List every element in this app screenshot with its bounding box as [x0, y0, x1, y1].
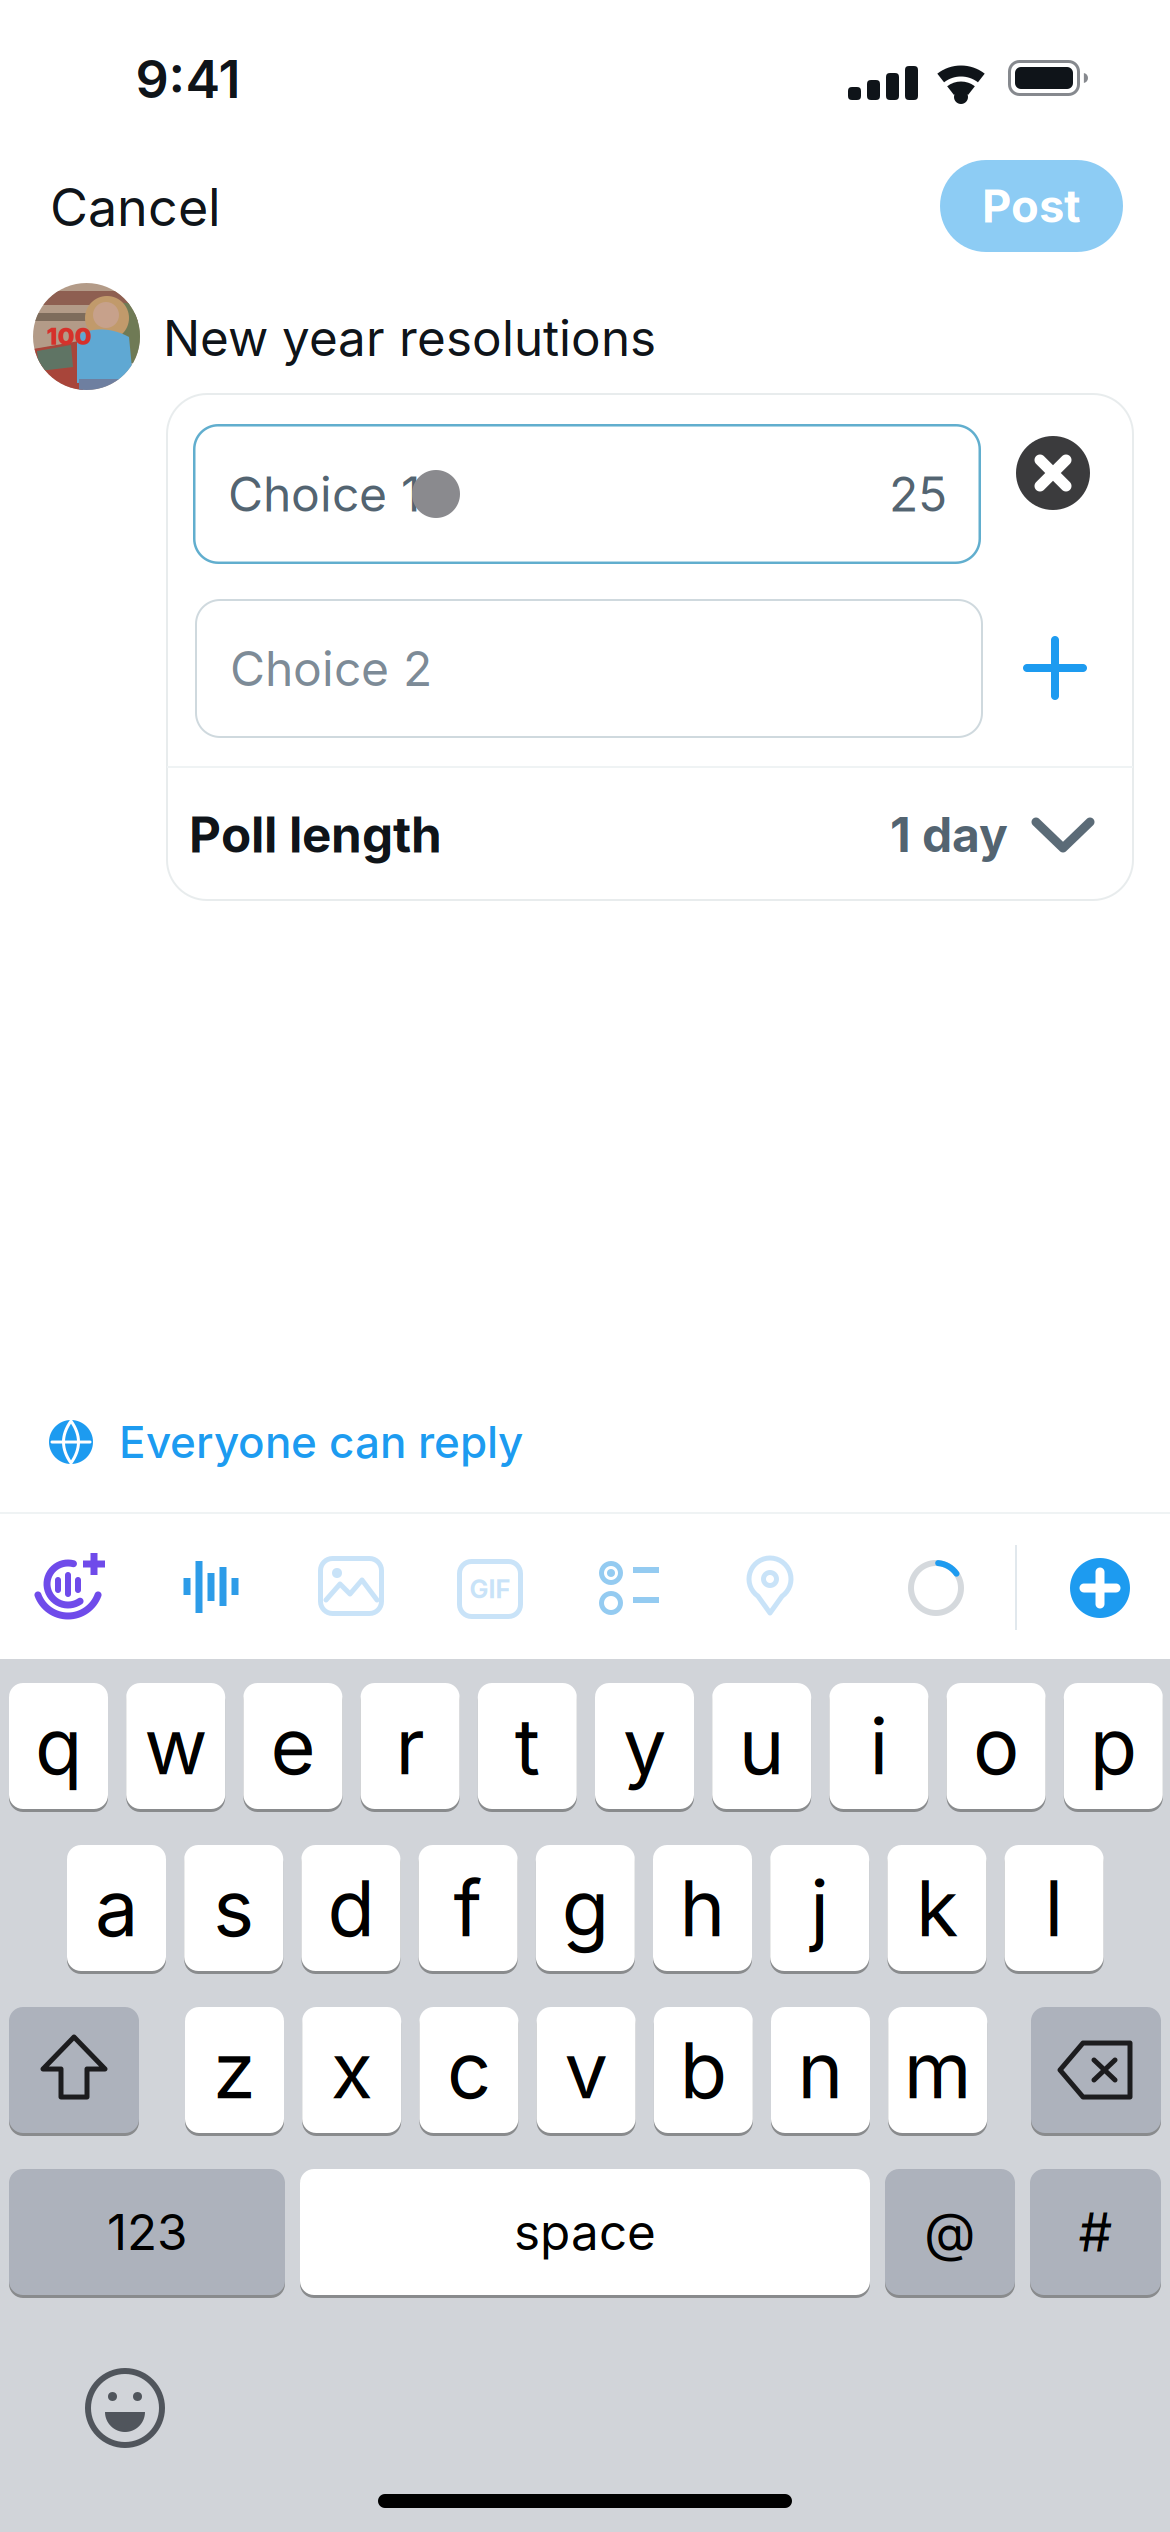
staticText: Choice 1 — [228, 466, 421, 522]
staticText: 9:41 — [135, 48, 240, 110]
button[interactable]: o — [947, 1683, 1046, 1809]
button[interactable]: Add another post — [1070, 1558, 1130, 1618]
button[interactable]: x — [302, 2007, 401, 2133]
staticText: Post — [982, 179, 1081, 233]
staticText: p — [1090, 1700, 1137, 1792]
staticText: z — [213, 2024, 256, 2116]
staticText: g — [562, 1862, 609, 1954]
staticText: n — [797, 2024, 843, 2116]
button[interactable]: m — [888, 2007, 987, 2133]
button[interactable]: c — [419, 2007, 518, 2133]
staticText: i — [869, 1700, 888, 1792]
button[interactable]: l — [1005, 1845, 1104, 1971]
button[interactable]: Emoji — [85, 2368, 165, 2448]
staticText: 1 day — [890, 806, 1008, 863]
button[interactable]: space — [300, 2169, 870, 2295]
staticText: Choice 2 — [230, 640, 432, 697]
button[interactable]: d — [301, 1845, 400, 1971]
staticText: Cancel — [50, 176, 221, 238]
button[interactable]: Delete — [1031, 2007, 1161, 2133]
staticText: l — [1045, 1862, 1064, 1954]
button[interactable]: f — [419, 1845, 518, 1971]
staticText: t — [515, 1700, 540, 1792]
button[interactable]: t — [478, 1683, 577, 1809]
button[interactable]: k — [887, 1845, 986, 1971]
staticText: Poll length — [189, 805, 442, 864]
staticText: r — [396, 1700, 425, 1792]
staticText: # — [1078, 2200, 1112, 2263]
button[interactable]: Shift — [9, 2007, 139, 2133]
button[interactable]: r — [361, 1683, 460, 1809]
button[interactable]: Cancel — [50, 158, 310, 256]
button[interactable]: p — [1064, 1683, 1163, 1809]
button[interactable]: s — [184, 1845, 283, 1971]
staticText: b — [680, 2024, 727, 2116]
button[interactable]: j — [770, 1845, 869, 1971]
button[interactable]: # — [1030, 2169, 1161, 2295]
staticText: New year resolutions — [163, 309, 656, 367]
staticText: 100 — [46, 322, 91, 350]
staticText: w — [144, 1700, 207, 1792]
button[interactable]: g — [536, 1845, 635, 1971]
staticText: k — [916, 1862, 958, 1954]
staticText: u — [739, 1700, 785, 1792]
button[interactable]: Poll length — [167, 768, 1133, 901]
staticText: o — [973, 1700, 1019, 1792]
staticText: q — [35, 1700, 82, 1792]
button[interactable]: Add choice — [1017, 630, 1093, 706]
button[interactable]: y — [595, 1683, 694, 1809]
staticText: GIF — [469, 1574, 510, 1604]
button[interactable]: q — [9, 1683, 108, 1809]
button[interactable]: 123 — [9, 2169, 285, 2295]
staticText: y — [623, 1700, 666, 1792]
staticText: c — [447, 2024, 491, 2116]
staticText: space — [514, 2203, 656, 2261]
staticText: s — [213, 1862, 254, 1954]
button[interactable]: w — [126, 1683, 225, 1809]
staticText: a — [95, 1862, 138, 1954]
staticText: m — [904, 2024, 972, 2116]
button[interactable]: Add poll — [597, 1553, 663, 1619]
button[interactable]: Post — [940, 160, 1123, 252]
button[interactable]: @ — [885, 2169, 1015, 2295]
button[interactable]: a — [67, 1845, 166, 1971]
button[interactable]: v — [537, 2007, 636, 2133]
button[interactable]: e — [243, 1683, 342, 1809]
button[interactable]: z — [185, 2007, 284, 2133]
staticText: 25 — [889, 466, 947, 522]
button[interactable]: i — [829, 1683, 928, 1809]
button[interactable]: Start a Space — [34, 1548, 110, 1624]
button[interactable]: Remove poll — [1016, 436, 1090, 510]
button[interactable]: Add photos — [318, 1553, 384, 1619]
button[interactable]: n — [771, 2007, 870, 2133]
staticText: e — [270, 1700, 315, 1792]
staticText: Everyone can reply — [119, 1416, 523, 1468]
button[interactable]: h — [653, 1845, 752, 1971]
button[interactable]: Everyone can reply — [49, 1420, 769, 1464]
button[interactable]: b — [654, 2007, 753, 2133]
staticText: @ — [924, 2200, 976, 2263]
staticText: d — [327, 1862, 374, 1954]
staticText: f — [454, 1862, 483, 1954]
staticText: h — [679, 1862, 725, 1954]
button[interactable]: Add a GIF — [457, 1553, 523, 1619]
button[interactable]: Voice — [178, 1554, 242, 1618]
staticText: j — [810, 1862, 829, 1954]
staticText: v — [565, 2024, 608, 2116]
button[interactable]: Tag location — [739, 1553, 801, 1619]
button[interactable]: u — [712, 1683, 811, 1809]
staticText: 123 — [107, 2203, 187, 2261]
staticText: x — [331, 2024, 373, 2116]
